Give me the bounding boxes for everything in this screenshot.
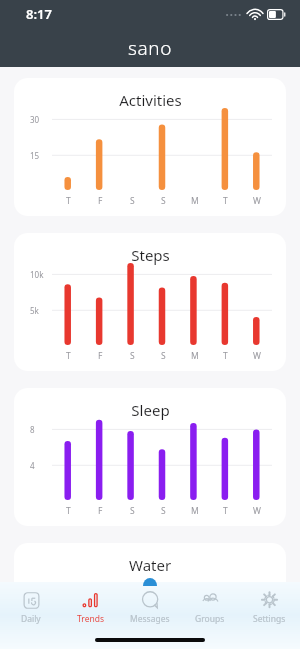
button[interactable]: Sleep bbox=[14, 388, 286, 526]
button[interactable]: Steps bbox=[14, 233, 286, 371]
staticText: 10k bbox=[30, 269, 44, 280]
staticText: Sleep bbox=[131, 400, 170, 420]
staticText: Steps bbox=[131, 245, 170, 265]
staticText: Activities bbox=[119, 90, 182, 110]
staticText: 30 bbox=[30, 114, 40, 125]
staticText: M bbox=[191, 350, 199, 362]
staticText: T bbox=[66, 505, 71, 517]
staticText: sano bbox=[128, 35, 172, 61]
staticText: S bbox=[161, 505, 166, 517]
staticText: S bbox=[130, 505, 135, 517]
staticText: 8:17 bbox=[26, 5, 52, 23]
staticText: F bbox=[98, 350, 103, 362]
staticText: S bbox=[130, 195, 135, 207]
staticText: Trends bbox=[77, 613, 104, 625]
button[interactable]: Messages bbox=[121, 589, 179, 627]
button[interactable]: Groups bbox=[181, 589, 239, 627]
staticText: T bbox=[223, 350, 228, 362]
button[interactable]: Settings bbox=[240, 589, 298, 627]
staticText: S bbox=[161, 350, 166, 362]
staticText: S bbox=[161, 195, 166, 207]
staticText: F bbox=[98, 195, 103, 207]
staticText: M bbox=[191, 195, 199, 207]
staticText: M bbox=[191, 505, 199, 517]
staticText: T bbox=[66, 350, 71, 362]
staticText: Groups bbox=[195, 613, 225, 625]
staticText: W bbox=[253, 350, 261, 362]
staticText: W bbox=[253, 195, 261, 207]
staticText: F bbox=[98, 505, 103, 517]
button[interactable]: Activities bbox=[14, 78, 286, 216]
button[interactable]: Trends bbox=[61, 589, 119, 627]
staticText: W bbox=[253, 505, 261, 517]
staticText: S bbox=[130, 350, 135, 362]
staticText: 8 bbox=[30, 424, 35, 435]
staticText: T bbox=[66, 195, 71, 207]
staticText: 4 bbox=[30, 460, 35, 471]
staticText: Water bbox=[129, 555, 172, 575]
staticText: T bbox=[223, 505, 228, 517]
staticText: Daily bbox=[21, 613, 41, 625]
staticText: Messages bbox=[130, 613, 170, 625]
staticText: 15 bbox=[30, 150, 40, 161]
staticText: T bbox=[223, 195, 228, 207]
staticText: Settings bbox=[253, 613, 286, 625]
button[interactable]: Water bbox=[14, 543, 286, 643]
button[interactable]: Daily bbox=[2, 589, 60, 627]
staticText: 5k bbox=[30, 305, 39, 316]
